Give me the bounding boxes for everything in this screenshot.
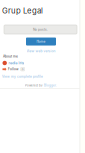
staticText: nadia lrita bbox=[8, 61, 24, 65]
button[interactable]: 0 bbox=[21, 67, 25, 71]
button[interactable]: View web version bbox=[21, 48, 61, 54]
staticText: 0 bbox=[22, 68, 24, 71]
staticText: About me bbox=[3, 54, 18, 58]
button[interactable]: nadia lrita bbox=[2, 60, 32, 65]
button[interactable]: Blogger. bbox=[44, 84, 57, 87]
staticText: Home bbox=[36, 40, 45, 43]
staticText: Grup Legal bbox=[2, 6, 43, 15]
staticText: Blogger. bbox=[44, 84, 57, 87]
staticText: Follow bbox=[8, 67, 19, 71]
button[interactable]: Home bbox=[26, 37, 56, 45]
button[interactable]: View my complete profile bbox=[2, 74, 47, 79]
staticText: View my complete profile bbox=[2, 75, 43, 78]
staticText: Powered by bbox=[25, 84, 43, 87]
staticText: View web version bbox=[26, 49, 55, 53]
staticText: No posts. bbox=[33, 28, 48, 31]
